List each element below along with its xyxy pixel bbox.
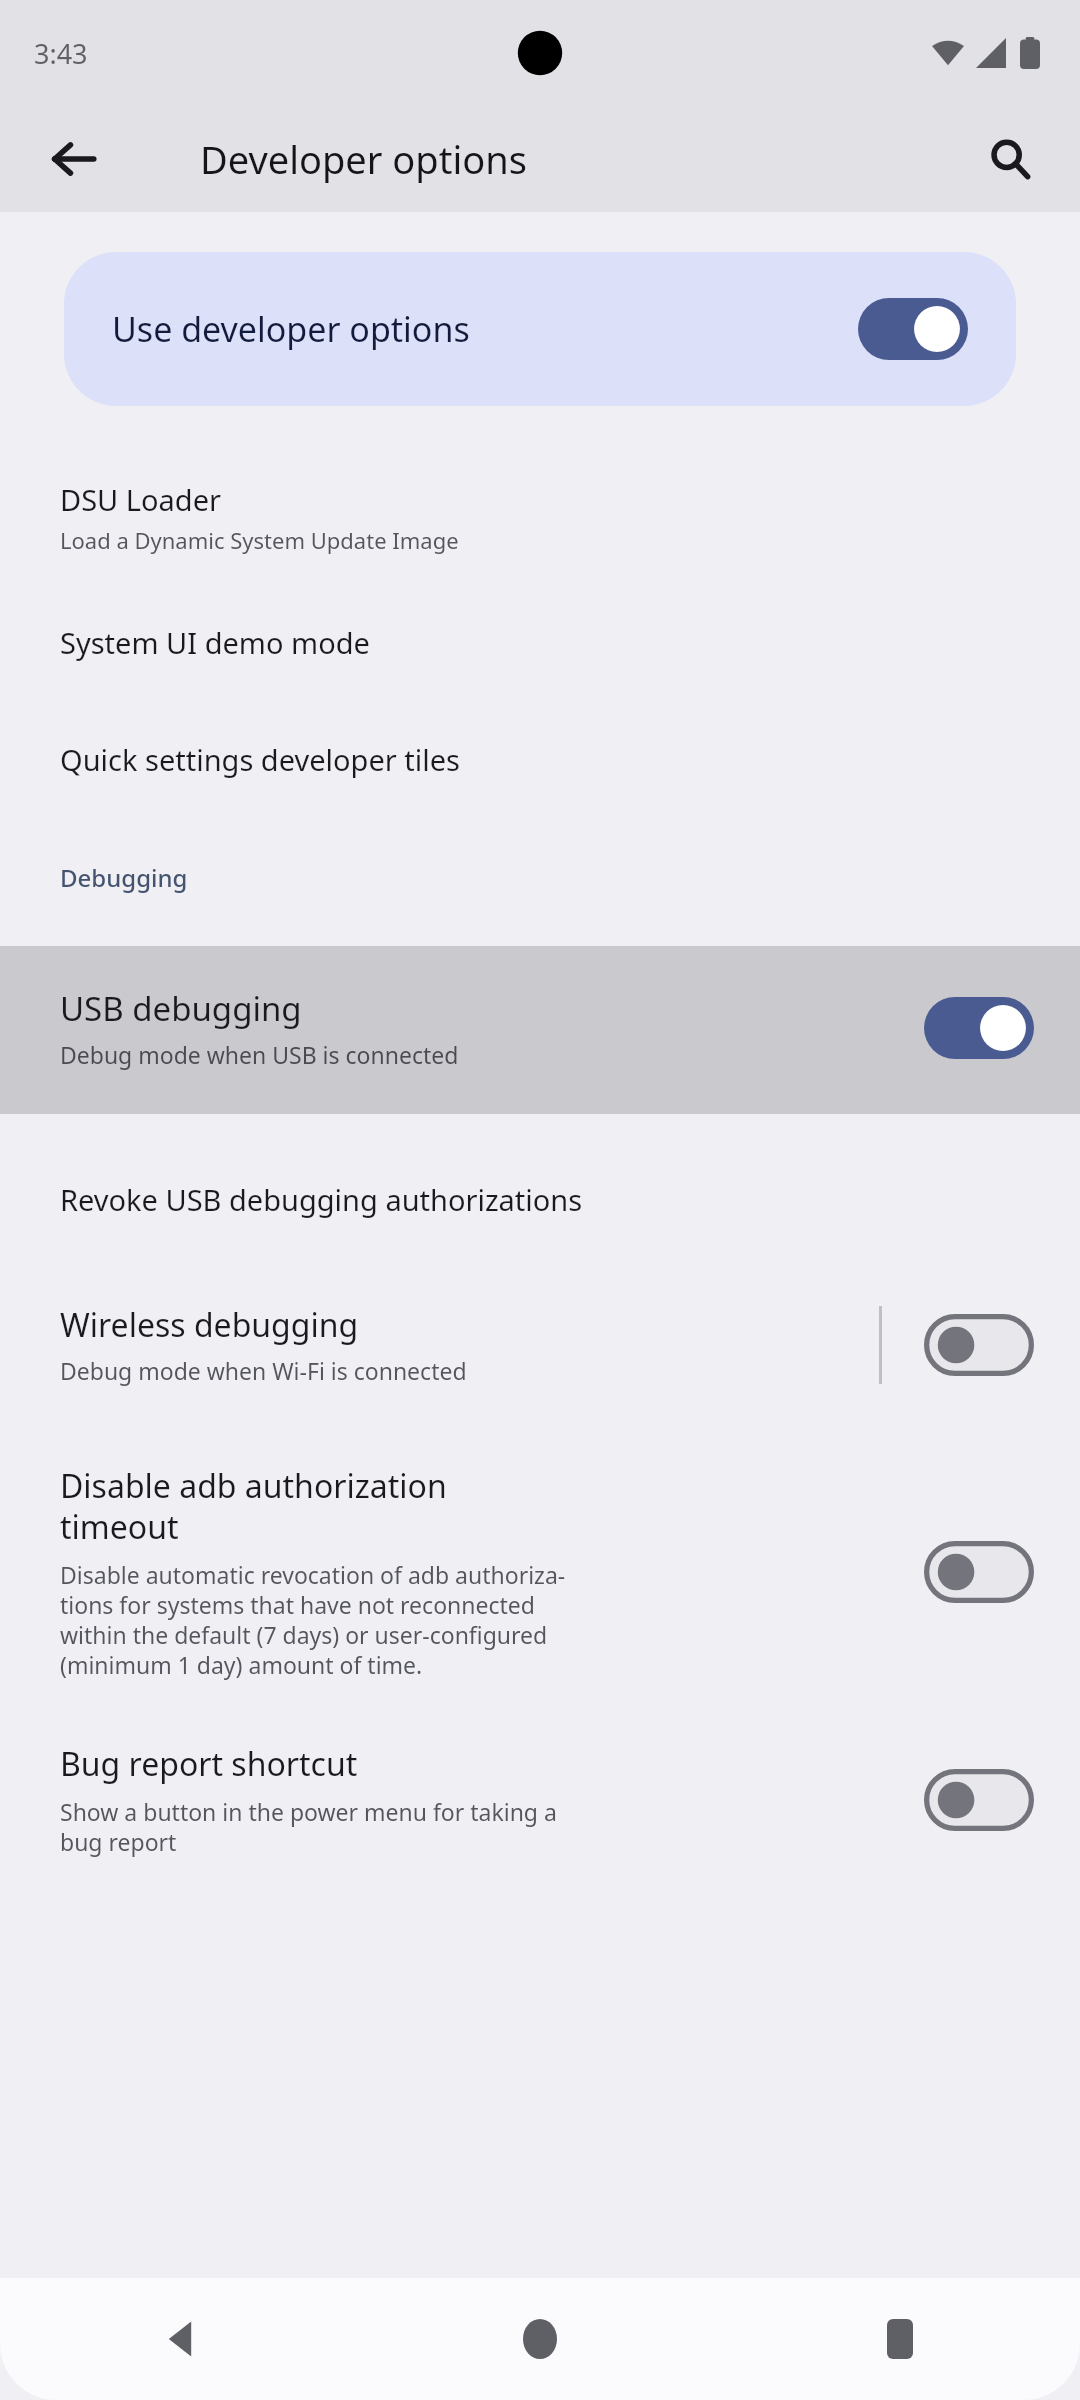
staticText: Load a Dynamic System Update Image (60, 525, 459, 555)
button[interactable]: Bug report shortcut toggle (924, 1769, 1034, 1831)
staticText: USB debugging (60, 986, 302, 1031)
staticText: Use developer options (112, 306, 858, 352)
button[interactable]: Recents (720, 2278, 1080, 2400)
button[interactable]: Disable adb authorization timeout toggle (924, 1541, 1034, 1603)
button[interactable]: Home (360, 2278, 720, 2400)
staticText: Bug report shortcut (60, 1742, 358, 1786)
button[interactable]: Back (34, 119, 114, 199)
staticText: Developer options (200, 133, 527, 185)
button[interactable]: Bug report shortcut (60, 1742, 900, 1857)
button[interactable]: Search (970, 119, 1050, 199)
button[interactable]: Disable adb authorization timeout (60, 1464, 894, 1680)
staticText: Debugging (60, 861, 188, 894)
button[interactable]: Quick settings developer tiles (0, 740, 1080, 779)
button[interactable]: Use developer options (64, 252, 1016, 406)
staticText: Debug mode when Wi-Fi is connected (60, 1355, 467, 1386)
staticText: System UI demo mode (60, 623, 370, 662)
staticText: Disable adb authorization timeout (60, 1464, 447, 1549)
button[interactable]: Wireless debugging toggle (924, 1314, 1034, 1376)
staticText: Wireless debugging (60, 1303, 359, 1347)
staticText: 3:43 (34, 35, 88, 72)
staticText: Revoke USB debugging authorizations (60, 1180, 583, 1219)
button[interactable]: DSU Loader (0, 480, 1080, 555)
button[interactable]: Revoke USB debugging authorizations (0, 1180, 1080, 1219)
staticText: Debug mode when USB is connected (60, 1039, 459, 1070)
staticText: Quick settings developer tiles (60, 740, 460, 779)
button[interactable]: System UI demo mode (0, 623, 1080, 662)
button[interactable]: Back (0, 2278, 360, 2400)
staticText: Disable automatic revocation of adb auth… (60, 1559, 566, 1680)
button[interactable]: Wireless debugging (60, 1293, 879, 1396)
button[interactable]: USB debugging (0, 946, 1080, 1114)
staticText: DSU Loader (60, 480, 222, 519)
staticText: Show a button in the power menu for taki… (60, 1796, 557, 1857)
